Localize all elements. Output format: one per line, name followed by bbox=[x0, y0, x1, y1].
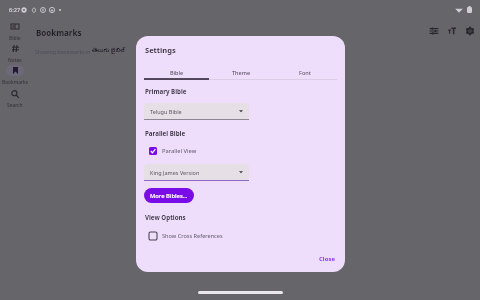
staticText: Font bbox=[299, 69, 311, 76]
staticText: 6:27 bbox=[9, 6, 21, 14]
button[interactable]: Search bbox=[0, 88, 30, 109]
button[interactable]: Text size bbox=[444, 23, 460, 39]
staticText: King James Version bbox=[150, 169, 200, 176]
staticText: Parallel View bbox=[162, 147, 197, 155]
button[interactable]: Bible bbox=[0, 21, 30, 42]
staticText: Bible bbox=[170, 69, 184, 76]
staticText: Bookmarks bbox=[36, 27, 82, 38]
button[interactable]: Parallel View bbox=[149, 147, 197, 155]
staticText: Bookmarks bbox=[2, 79, 29, 86]
button[interactable]: Notes bbox=[0, 43, 30, 64]
staticText: Show Cross References bbox=[162, 232, 223, 240]
button[interactable]: Settings bbox=[462, 23, 478, 39]
staticText: Bible bbox=[9, 35, 21, 42]
staticText: Showing bookmarks in bbox=[35, 48, 92, 55]
staticText: తెలుగు బైబిల్ bbox=[92, 46, 125, 55]
staticText: Telugu Bible bbox=[150, 108, 182, 115]
button[interactable]: Font bbox=[273, 64, 337, 80]
button[interactable]: King James Version bbox=[144, 164, 249, 181]
staticText: Settings bbox=[145, 45, 176, 55]
button[interactable]: Bookmarks bbox=[0, 65, 30, 86]
staticText: More Bibles... bbox=[150, 192, 188, 200]
button[interactable]: More Bibles... bbox=[144, 188, 194, 203]
button[interactable]: Theme bbox=[209, 64, 273, 80]
staticText: Primary Bible bbox=[145, 87, 187, 95]
staticText: Notes bbox=[8, 57, 22, 64]
staticText: View Options bbox=[145, 213, 186, 221]
staticText: Close bbox=[319, 255, 335, 263]
staticText: Theme bbox=[232, 69, 251, 76]
button[interactable]: Telugu Bible bbox=[144, 103, 249, 120]
button[interactable]: Close bbox=[315, 253, 339, 265]
staticText: Search bbox=[7, 102, 23, 109]
button[interactable]: Show Cross References bbox=[149, 232, 223, 240]
staticText: Parallel Bible bbox=[145, 129, 186, 137]
button[interactable]: Filter bbox=[426, 23, 442, 39]
button[interactable]: Bible bbox=[144, 64, 209, 80]
